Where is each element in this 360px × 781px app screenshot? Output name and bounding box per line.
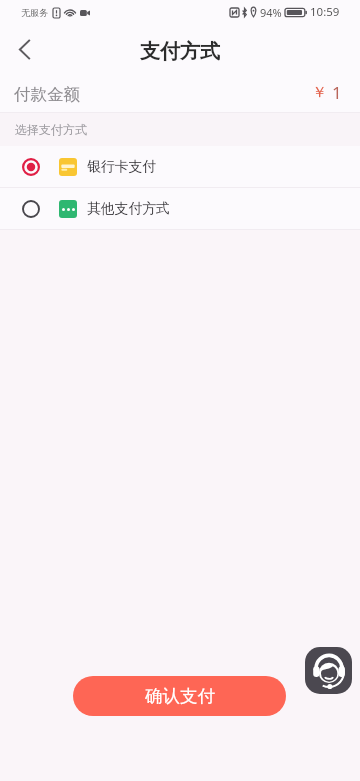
button[interactable]: 其他支付方式 [0, 188, 360, 229]
staticText: 10:59 [310, 4, 340, 20]
staticText: ￥ [312, 83, 327, 102]
staticText: 94% [260, 5, 282, 20]
staticText: 确认支付 [145, 685, 215, 707]
staticText: 1 [332, 81, 342, 104]
button[interactable]: 银行卡支付 [0, 146, 360, 187]
button[interactable]: 确认支付 [73, 676, 286, 716]
button[interactable]: 在线客服 [305, 647, 352, 694]
staticText: 银行卡支付 [87, 158, 156, 175]
staticText: 选择支付方式 [15, 122, 87, 137]
staticText: 其他支付方式 [87, 200, 170, 217]
button[interactable]: 返回 [2, 27, 46, 71]
staticText: 无服务 [21, 7, 48, 18]
staticText: 付款金额 [14, 84, 80, 105]
staticText: 支付方式 [140, 39, 220, 64]
